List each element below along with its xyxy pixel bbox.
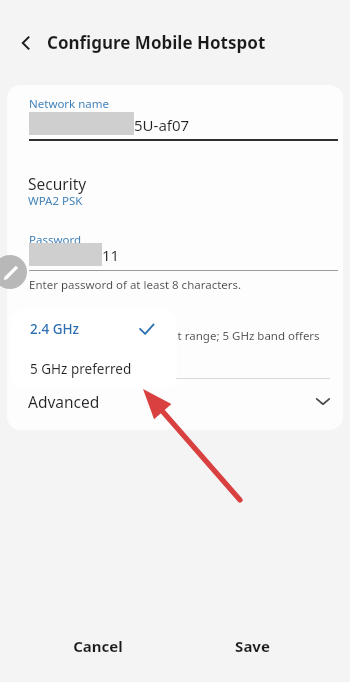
staticText: Security <box>28 173 87 194</box>
staticText: WPA2 PSK <box>28 193 83 209</box>
button[interactable]: Advanced <box>7 379 343 423</box>
staticText: Save <box>235 636 270 656</box>
staticText: 2.4 GHz band offers the best range; 5 GH… <box>28 328 328 360</box>
button[interactable]: Security <box>7 167 343 213</box>
staticText: Enter password of at least 8 characters. <box>29 277 242 293</box>
button[interactable]: 2.4 GHz <box>11 309 177 349</box>
staticText: Configure Mobile Hotspot <box>47 31 266 54</box>
button[interactable]: AP Band <box>7 300 343 378</box>
button[interactable]: Save <box>200 624 305 668</box>
staticText: 2.4 GHz <box>30 320 79 338</box>
button[interactable]: Cancel <box>40 624 155 668</box>
staticText: Advanced <box>28 391 100 412</box>
button[interactable]: Back <box>10 27 42 59</box>
staticText: 5 GHz preferred <box>30 360 132 378</box>
staticText: 5U-af07 <box>134 115 190 135</box>
staticText: Cancel <box>73 636 123 656</box>
button[interactable]: Edit <box>0 255 27 289</box>
button[interactable]: 5 GHz preferred <box>11 349 177 389</box>
staticText: 11 <box>102 245 120 265</box>
staticText: AP Band <box>28 308 90 329</box>
staticText: Password <box>29 232 82 248</box>
staticText: Network name <box>29 96 110 112</box>
